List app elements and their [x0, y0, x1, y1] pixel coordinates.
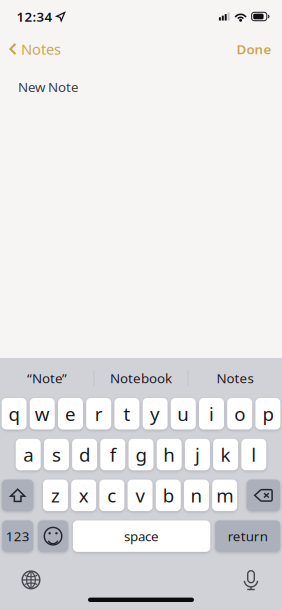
button[interactable]: n [184, 480, 209, 511]
staticText: h [163, 442, 175, 467]
button[interactable]: b [156, 480, 181, 511]
staticText: f [110, 442, 116, 467]
staticText: u [177, 401, 189, 426]
button[interactable]: w [30, 398, 55, 429]
button[interactable]: m [212, 480, 237, 511]
staticText: j [195, 442, 200, 467]
button[interactable]: q [2, 398, 27, 429]
button[interactable]: j [185, 439, 210, 470]
button[interactable]: “Note” [0, 358, 93, 398]
staticText: Notes [21, 39, 61, 59]
button[interactable]: Notes [188, 358, 281, 398]
button[interactable]: v [128, 480, 153, 511]
staticText: w [35, 401, 50, 426]
button[interactable]: y [143, 398, 168, 429]
button[interactable]: o [227, 398, 252, 429]
button[interactable]: s [44, 439, 69, 470]
button[interactable]: e [58, 398, 83, 429]
button[interactable]: Done [222, 33, 282, 65]
staticText: Notes [216, 369, 253, 387]
button[interactable]: Next keyboard [14, 566, 48, 594]
button[interactable]: p [255, 398, 280, 429]
button[interactable]: Notes [0, 33, 69, 65]
staticText: p [262, 401, 273, 426]
staticText: “Note” [27, 369, 67, 387]
staticText: k [221, 442, 231, 467]
button[interactable]: return [215, 520, 280, 552]
button[interactable]: u [171, 398, 196, 429]
staticText: z [51, 483, 60, 508]
staticText: 12:34 [17, 8, 53, 25]
staticText: Notebook [110, 369, 172, 387]
button[interactable]: x [71, 480, 96, 511]
staticText: r [95, 401, 103, 426]
staticText: i [209, 401, 214, 426]
button[interactable]: h [157, 439, 182, 470]
staticText: s [52, 442, 61, 467]
staticText: 123 [6, 527, 30, 545]
button[interactable]: Dictate [234, 566, 268, 594]
button[interactable]: f [100, 439, 125, 470]
button[interactable]: i [199, 398, 224, 429]
staticText: v [136, 483, 145, 508]
button[interactable]: t [114, 398, 139, 429]
staticText: e [65, 401, 76, 426]
button[interactable]: Emoji [38, 520, 68, 552]
button[interactable]: Numbers and symbols [2, 520, 33, 552]
button[interactable]: k [213, 439, 238, 470]
button[interactable]: Notebook [94, 358, 187, 398]
button[interactable]: l [241, 439, 266, 470]
staticText: a [23, 442, 33, 467]
staticText: y [150, 401, 160, 426]
button[interactable]: a [16, 439, 41, 470]
staticText: x [79, 483, 89, 508]
button[interactable]: r [86, 398, 111, 429]
staticText: return [228, 527, 268, 545]
button[interactable]: z [43, 480, 68, 511]
button[interactable]: Shift [2, 480, 33, 511]
staticText: g [135, 442, 146, 467]
staticText: b [163, 483, 174, 508]
button[interactable]: space [73, 520, 210, 552]
staticText: d [79, 442, 90, 467]
button[interactable]: g [128, 439, 153, 470]
staticText: n [190, 483, 202, 508]
button[interactable]: Delete [247, 480, 280, 511]
staticText: space [124, 527, 159, 545]
staticText: c [107, 483, 116, 508]
button[interactable]: c [99, 480, 124, 511]
staticText: New Note [18, 78, 79, 96]
staticText: t [123, 401, 130, 426]
button[interactable]: d [72, 439, 97, 470]
staticText: q [9, 401, 20, 426]
staticText: m [216, 483, 233, 508]
staticText: o [234, 401, 245, 426]
staticText: l [251, 442, 256, 467]
staticText: Done [236, 40, 271, 58]
